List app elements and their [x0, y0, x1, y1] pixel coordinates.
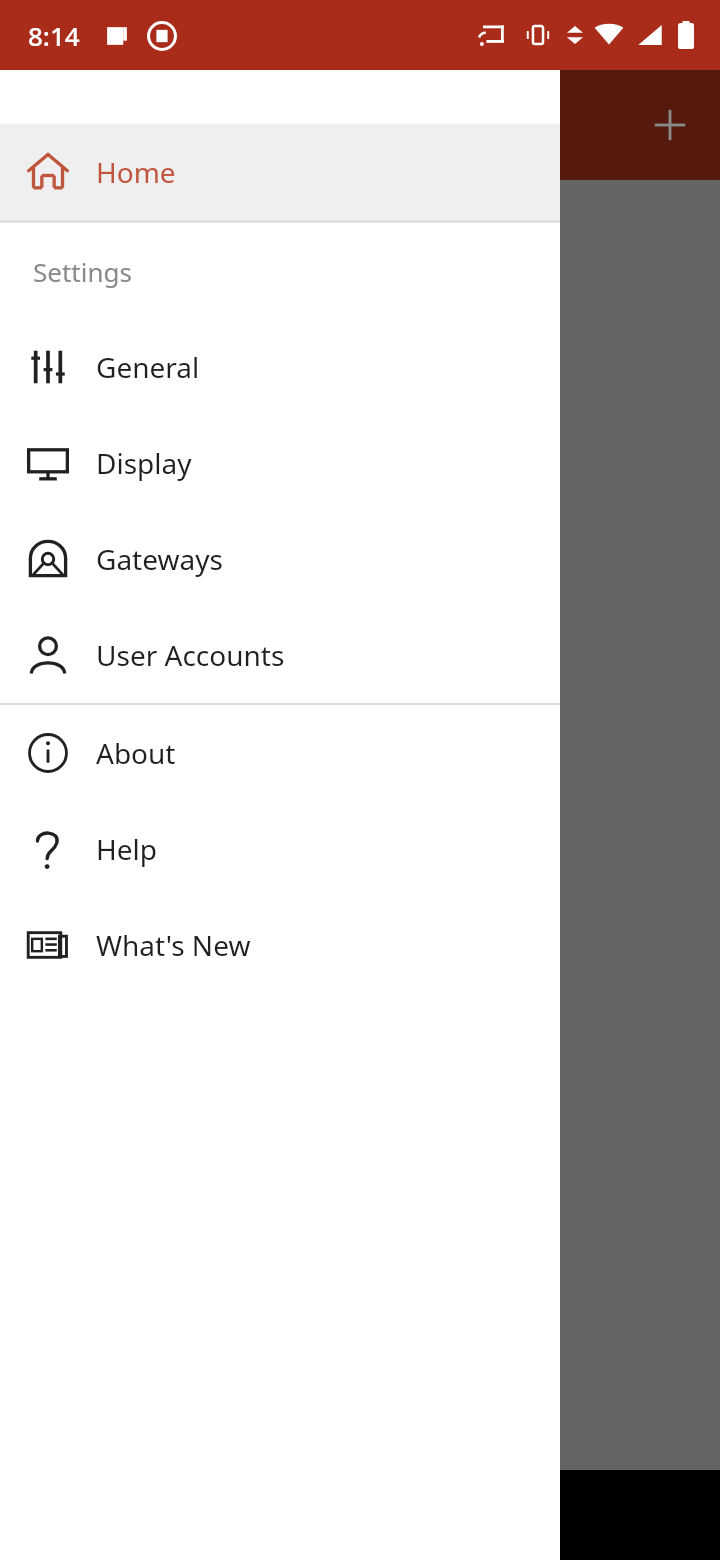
button[interactable]: About: [0, 705, 560, 801]
staticText: Help: [96, 830, 157, 868]
staticText: Settings: [33, 254, 132, 289]
staticText: 8:14: [28, 18, 80, 53]
button[interactable]: Gateways: [0, 511, 560, 607]
staticText: User Accounts: [96, 636, 285, 674]
staticText: Tap + to add remote resources or desktop…: [56, 539, 336, 668]
staticText: Home: [96, 153, 176, 191]
staticText: What's New: [96, 926, 251, 964]
staticText: General: [96, 348, 200, 386]
button[interactable]: General: [0, 319, 560, 415]
button[interactable]: Home: [0, 124, 560, 220]
button[interactable]: What's New: [0, 897, 560, 993]
staticText: Connect to a remote desktop: [56, 440, 425, 477]
button[interactable]: Add: [642, 97, 698, 153]
staticText: About: [96, 734, 176, 772]
staticText: Gateways: [96, 540, 223, 578]
button[interactable]: Help: [0, 801, 560, 897]
button[interactable]: User Accounts: [0, 607, 560, 703]
button[interactable]: Display: [0, 415, 560, 511]
staticText: Display: [96, 444, 192, 482]
